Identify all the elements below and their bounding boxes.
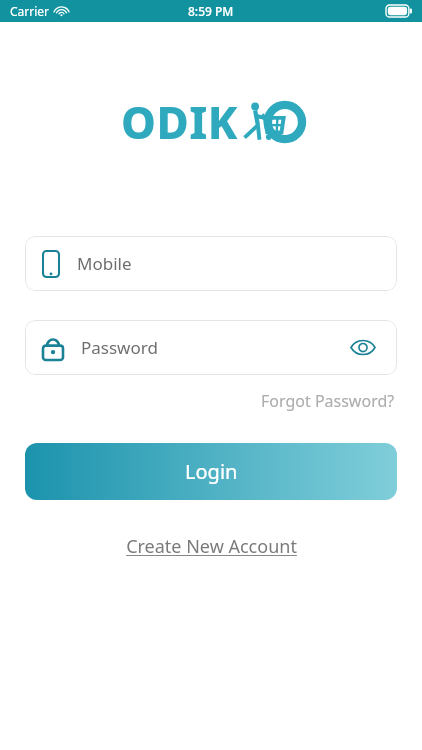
staticText: Forgot Password?: [261, 390, 395, 412]
button[interactable]: Forgot Password?: [259, 387, 397, 415]
staticText: Login: [185, 458, 238, 485]
button[interactable]: Create New Account: [120, 530, 303, 563]
button[interactable]: Login: [25, 443, 397, 500]
button[interactable]: Mobile: [25, 236, 397, 291]
staticText: Carrier: [10, 3, 50, 19]
button[interactable]: Show password: [347, 336, 379, 359]
staticText: Create New Account: [126, 534, 297, 559]
staticText: ODIK: [121, 92, 239, 152]
staticText: Mobile: [77, 252, 379, 275]
button[interactable]: Password: [25, 320, 397, 375]
staticText: Password: [81, 336, 347, 359]
staticText: 8:59 PM: [188, 3, 234, 19]
